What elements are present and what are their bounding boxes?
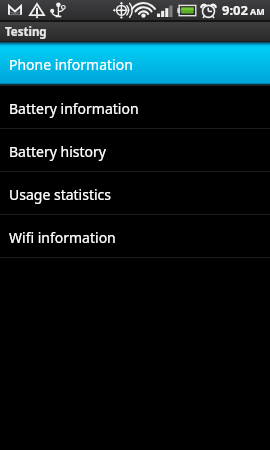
- staticText: AM: [250, 5, 265, 17]
- staticText: Testing: [5, 24, 47, 40]
- staticText: Battery history: [9, 142, 106, 161]
- staticText: Wifi information: [9, 228, 116, 247]
- button[interactable]: Phone information: [0, 42, 270, 85]
- staticText: 9:02: [222, 1, 248, 19]
- staticText: Battery information: [9, 99, 139, 118]
- staticText: Usage statistics: [9, 185, 112, 204]
- button[interactable]: Wifi information: [0, 215, 270, 257]
- button[interactable]: Battery information: [0, 86, 270, 128]
- staticText: Phone information: [9, 55, 133, 74]
- button[interactable]: Battery history: [0, 129, 270, 171]
- button[interactable]: Usage statistics: [0, 172, 270, 214]
